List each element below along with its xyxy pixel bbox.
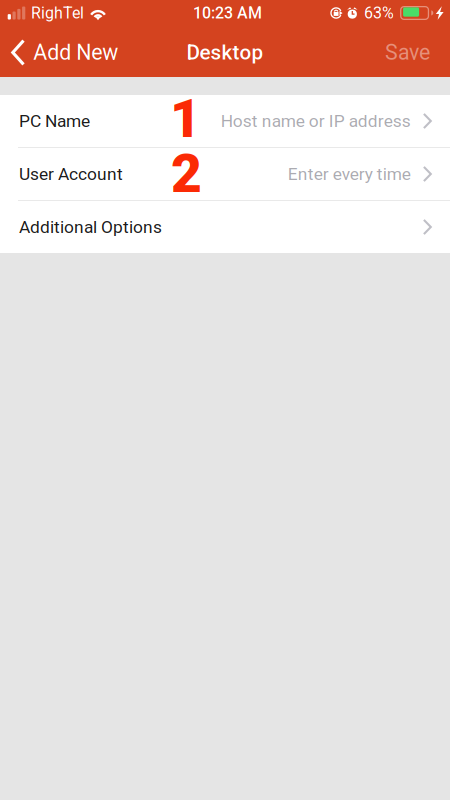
staticText: 1 <box>170 87 201 150</box>
staticText: Desktop <box>186 40 263 65</box>
button[interactable]: Save <box>369 28 450 77</box>
button[interactable]: User Account <box>0 148 450 200</box>
staticText: PC Name <box>19 111 90 131</box>
staticText: User Account <box>19 164 123 184</box>
staticText: Add New <box>33 40 118 65</box>
staticText: 10:23 AM <box>193 4 262 22</box>
staticText: 2 <box>171 142 202 205</box>
button[interactable]: Add New <box>0 28 128 77</box>
staticText: RighTel <box>31 4 84 22</box>
staticText: Additional Options <box>19 217 162 237</box>
button[interactable]: PC Name <box>0 95 450 147</box>
button[interactable]: Additional Options <box>0 201 450 253</box>
staticText: Enter every time <box>288 164 411 184</box>
staticText: Save <box>385 40 430 65</box>
staticText: 63% <box>364 4 394 22</box>
staticText: Host name or IP address <box>221 111 411 131</box>
